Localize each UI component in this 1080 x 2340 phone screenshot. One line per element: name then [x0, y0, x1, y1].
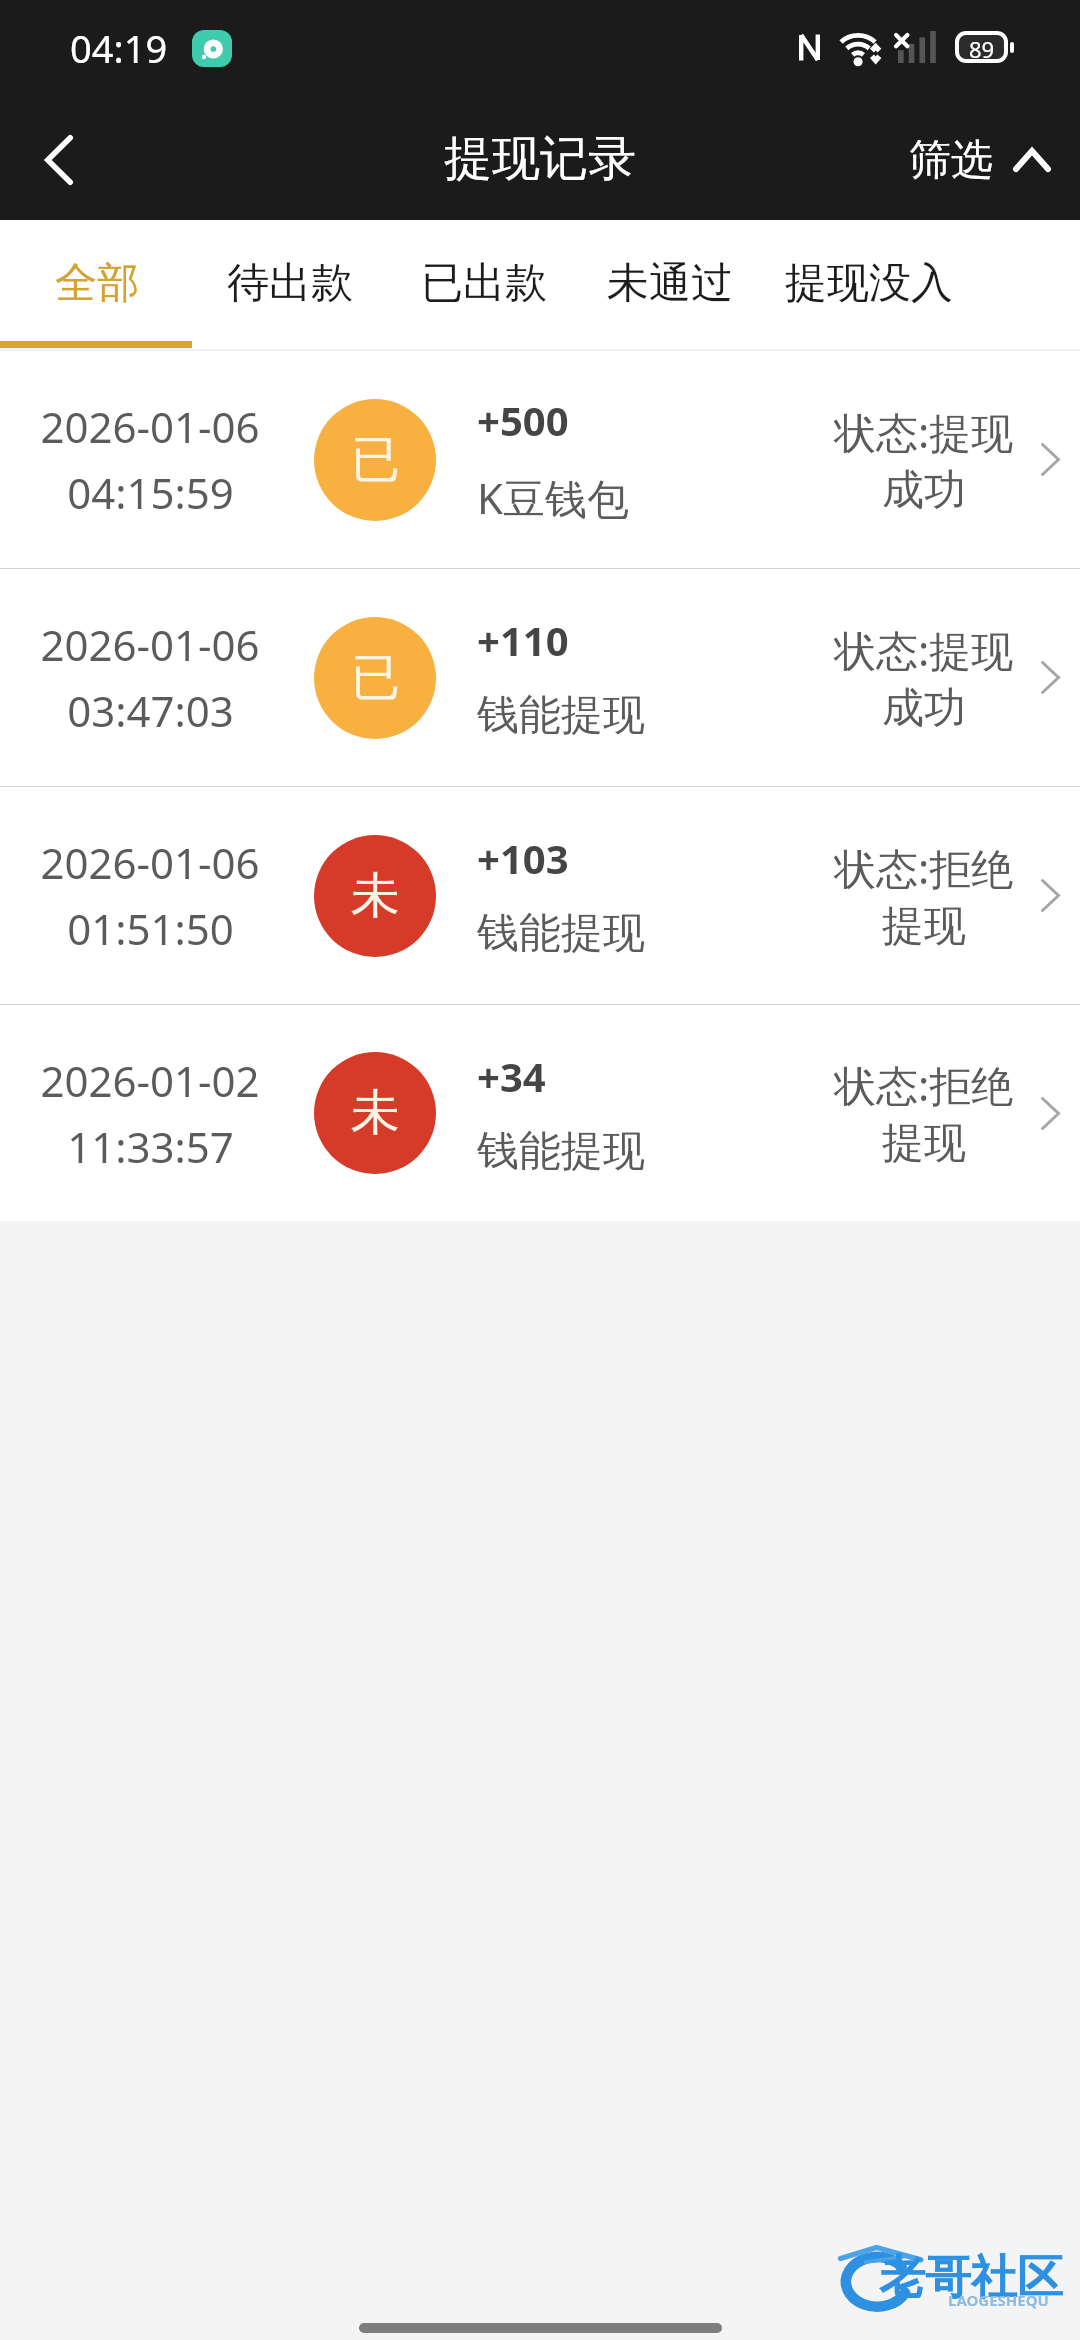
- button[interactable]: 2026-01-06: [0, 787, 1080, 1004]
- staticText: +500: [477, 393, 569, 447]
- staticText: 钱能提现: [477, 907, 645, 960]
- staticText: 待出款: [227, 257, 353, 310]
- staticText: 未通过: [607, 257, 733, 310]
- button[interactable]: 筛选: [891, 100, 1069, 220]
- staticText: 状态:提现: [834, 403, 1014, 460]
- staticText: +103: [477, 831, 569, 885]
- button[interactable]: 2026-01-06: [0, 569, 1080, 786]
- staticText: 成功: [882, 464, 966, 517]
- staticText: +34: [477, 1049, 546, 1103]
- other: 查看详情: [1020, 787, 1080, 1004]
- staticText: 89: [969, 35, 995, 58]
- staticText: 2026-01-06: [40, 834, 260, 891]
- staticText: 03:47:03: [67, 682, 234, 739]
- staticText: 提现记录: [444, 129, 636, 189]
- staticText: 2026-01-06: [40, 398, 260, 455]
- button[interactable]: 2026-01-06: [0, 351, 1080, 568]
- staticText: 提现没入: [785, 257, 953, 310]
- button[interactable]: 已出款: [386, 220, 582, 351]
- button[interactable]: 待出款: [194, 220, 386, 351]
- other: 查看详情: [1020, 569, 1080, 786]
- button[interactable]: 返回: [0, 100, 118, 220]
- staticText: K豆钱包: [477, 469, 629, 526]
- other: 查看详情: [1020, 351, 1080, 568]
- staticText: 状态:拒绝: [834, 839, 1014, 896]
- button[interactable]: 未通过: [582, 220, 758, 351]
- staticText: 老哥社区: [879, 2249, 1063, 2307]
- staticText: 未: [351, 865, 400, 927]
- staticText: 筛选: [909, 134, 993, 187]
- other: 查看详情: [1020, 1005, 1080, 1221]
- staticText: 2026-01-02: [40, 1052, 260, 1109]
- staticText: 状态:提现: [834, 621, 1014, 678]
- staticText: 全部: [55, 257, 139, 310]
- staticText: 钱能提现: [477, 1125, 645, 1178]
- staticText: 未: [351, 1082, 400, 1144]
- button[interactable]: 提现没入: [758, 220, 980, 351]
- staticText: 已: [351, 647, 400, 709]
- staticText: 已出款: [421, 257, 547, 310]
- staticText: 2026-01-06: [40, 616, 260, 673]
- staticText: 04:19: [70, 22, 168, 74]
- staticText: 已: [351, 429, 400, 491]
- staticText: 提现: [882, 900, 966, 953]
- staticText: 钱能提现: [477, 689, 645, 742]
- staticText: 提现: [882, 1117, 966, 1170]
- staticText: 04:15:59: [67, 464, 234, 521]
- staticText: 11:33:57: [67, 1118, 234, 1175]
- staticText: +110: [477, 613, 569, 667]
- button[interactable]: 全部: [0, 220, 194, 351]
- staticText: LAOGESHEQU: [948, 2290, 1049, 2310]
- staticText: 状态:拒绝: [834, 1056, 1014, 1113]
- button[interactable]: 2026-01-02: [0, 1005, 1080, 1221]
- staticText: 01:51:50: [67, 900, 234, 957]
- staticText: 成功: [882, 682, 966, 735]
